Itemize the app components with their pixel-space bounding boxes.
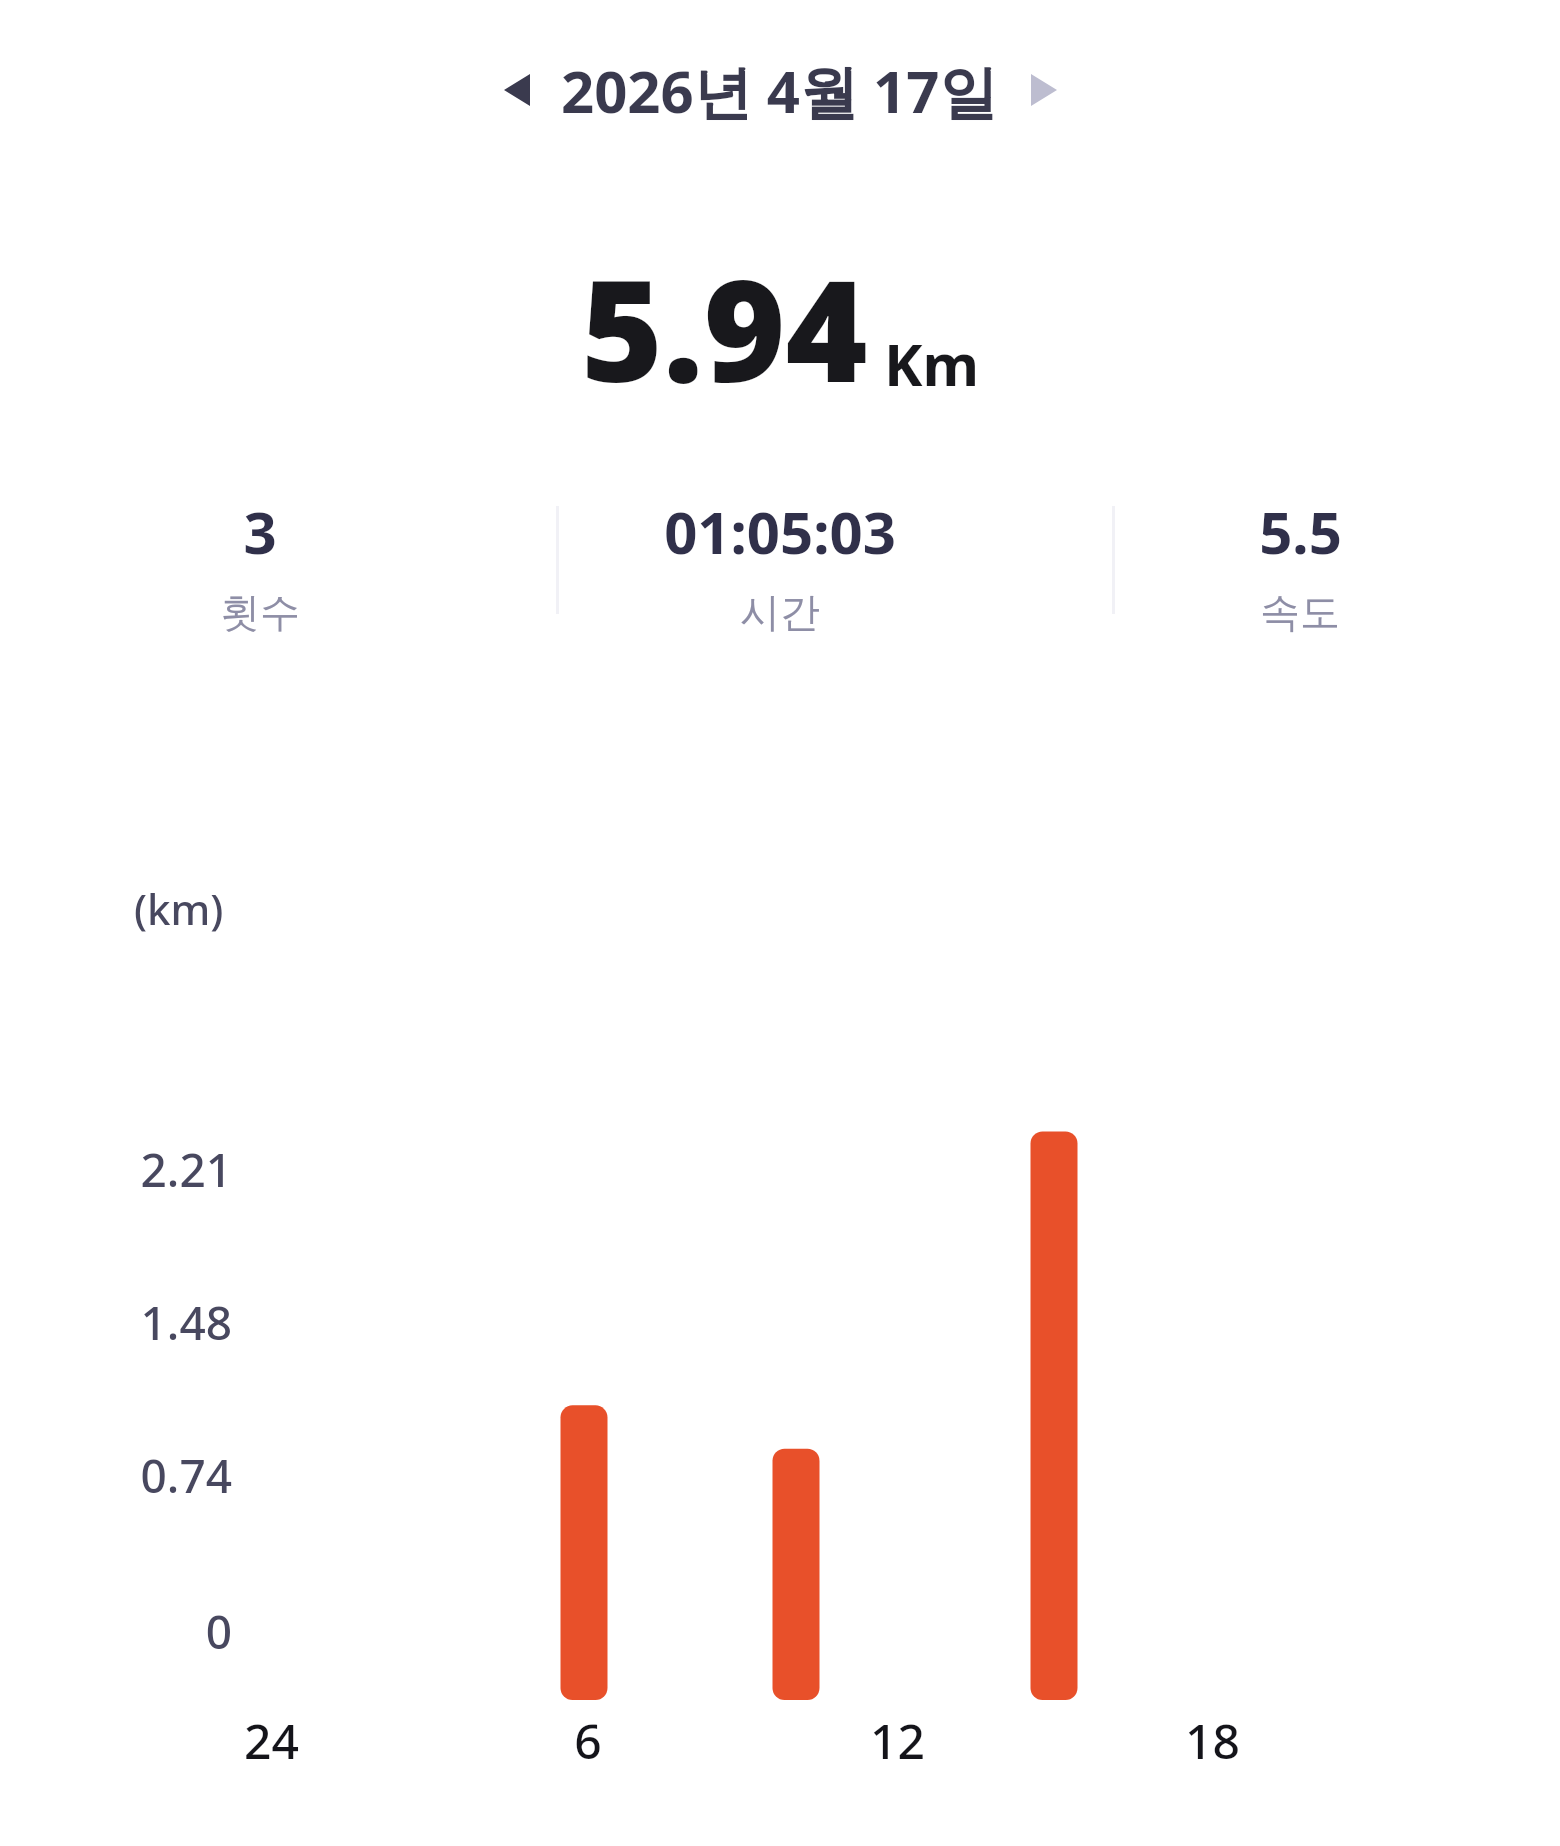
staticText: 5.5	[1259, 492, 1342, 571]
button[interactable]: Next day	[1012, 58, 1076, 122]
staticText: 12	[870, 1708, 925, 1773]
staticText: Km	[884, 324, 980, 403]
button[interactable]: 5.5	[1040, 492, 1560, 642]
staticText: 24	[244, 1708, 299, 1773]
staticText: 횟수	[220, 587, 300, 637]
staticText: 2.21	[140, 1138, 232, 1198]
staticText: 6	[574, 1708, 602, 1773]
staticText: 3	[243, 492, 277, 571]
button[interactable]: Previous day	[485, 58, 549, 122]
staticText: 0	[205, 1600, 232, 1660]
staticText: 속도	[1260, 587, 1340, 637]
staticText: (km)	[134, 880, 224, 937]
button[interactable]: 3	[0, 492, 520, 642]
staticText: 시간	[740, 587, 820, 637]
staticText: 01:05:03	[664, 492, 896, 571]
staticText: 5.94	[581, 232, 868, 423]
staticText: 1.48	[140, 1291, 232, 1351]
staticText: 18	[1185, 1708, 1240, 1773]
button[interactable]: 01:05:03	[520, 492, 1040, 642]
staticText: 0.74	[140, 1444, 232, 1504]
staticText: 2026년 4월 17일	[561, 51, 998, 130]
